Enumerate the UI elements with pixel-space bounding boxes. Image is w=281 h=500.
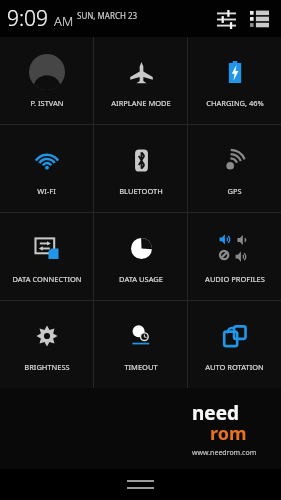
staticText: www.needrom.com	[192, 448, 257, 458]
staticText: AM	[54, 12, 74, 30]
button[interactable]: Quick settings	[213, 6, 239, 32]
staticText: 9:09	[7, 4, 49, 33]
staticText: SUN, MARCH 23	[77, 10, 138, 21]
staticText: BLUETOOTH	[119, 186, 163, 196]
button[interactable]: TIMEOUT	[94, 301, 187, 388]
staticText: GPS	[227, 186, 242, 196]
button[interactable]: Menu	[118, 471, 163, 498]
button[interactable]: AIRPLANE MODE	[94, 37, 187, 124]
staticText: DATA CONNECTION	[12, 274, 82, 284]
button[interactable]: GPS	[188, 125, 281, 212]
button[interactable]: AUDIO PROFILES	[188, 213, 281, 300]
button[interactable]: DATA USAGE	[94, 213, 187, 300]
button[interactable]: CHARGING, 46%	[188, 37, 281, 124]
button[interactable]: BRIGHTNESS	[0, 301, 93, 388]
staticText: AIRPLANE MODE	[111, 98, 171, 108]
staticText: WI-FI	[37, 186, 56, 196]
button[interactable]: WI-FI	[0, 125, 93, 212]
staticText: CHARGING, 46%	[206, 98, 264, 108]
button[interactable]: DATA CONNECTION	[0, 213, 93, 300]
button[interactable]: P. ISTVAN	[0, 37, 93, 124]
staticText: rom	[210, 421, 247, 446]
staticText: AUTO ROTATION	[205, 362, 264, 372]
staticText: TIMEOUT	[124, 362, 158, 372]
staticText: need	[192, 400, 240, 426]
staticText: BRIGHTNESS	[24, 362, 70, 372]
button[interactable]: AUTO ROTATION	[188, 301, 281, 388]
staticText: DATA USAGE	[119, 274, 163, 284]
staticText: AUDIO PROFILES	[205, 274, 265, 284]
staticText: P. ISTVAN	[30, 98, 64, 108]
button[interactable]: Notifications	[246, 6, 272, 32]
button[interactable]: BLUETOOTH	[94, 125, 187, 212]
